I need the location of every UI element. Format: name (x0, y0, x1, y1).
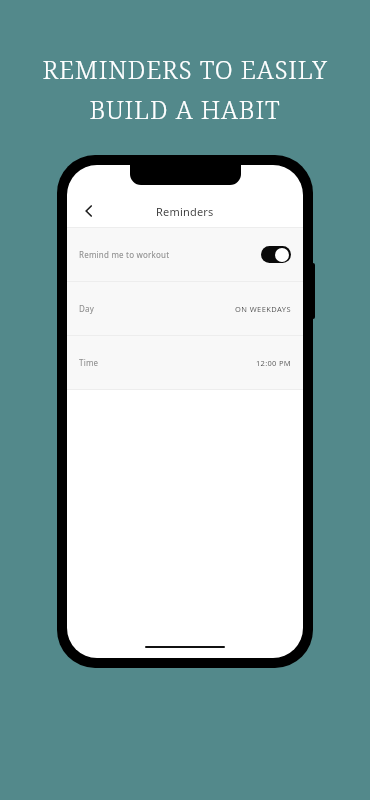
staticText: Time (79, 357, 99, 368)
staticText: Day (79, 303, 95, 314)
button[interactable]: Back (75, 197, 103, 225)
button[interactable]: Remind me to workout (67, 228, 303, 281)
button[interactable]: Time (67, 336, 303, 389)
staticText: 12:00 PM (256, 358, 291, 368)
staticText: Reminders (156, 204, 214, 219)
button[interactable]: Remind me to workout toggle (261, 246, 291, 263)
staticText: BUILD A HABIT (89, 92, 281, 126)
button[interactable]: Day (67, 282, 303, 335)
staticText: Remind me to workout (79, 249, 170, 260)
staticText: ON WEEKDAYS (235, 304, 291, 314)
staticText: REMINDERS TO EASILY (42, 52, 328, 86)
